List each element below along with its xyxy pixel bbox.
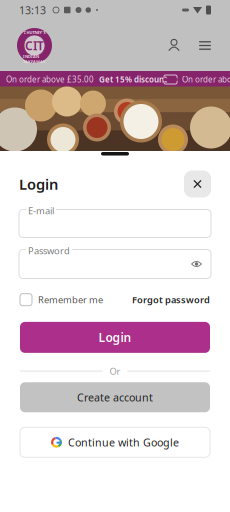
button[interactable]: Forgot password xyxy=(132,293,210,306)
staticText: Continue with Google xyxy=(68,435,179,449)
staticText: Password xyxy=(28,244,70,257)
staticText: Login xyxy=(19,174,58,194)
staticText: Or xyxy=(109,365,120,377)
button[interactable]: Create account xyxy=(20,382,210,412)
staticText: Remember me xyxy=(38,293,103,306)
staticText: Login xyxy=(98,329,131,345)
button[interactable]: Login xyxy=(20,322,210,353)
button[interactable]: Close xyxy=(184,170,211,197)
staticText: CIT xyxy=(25,37,44,53)
staticText: 13:13 xyxy=(19,3,46,17)
staticText: Forgot password xyxy=(132,293,210,306)
staticText: On order above £35.00 xyxy=(182,74,230,85)
staticText: E-mail xyxy=(28,204,54,217)
button[interactable]: Menu xyxy=(194,35,216,56)
button[interactable]: Continue with Google xyxy=(20,427,210,457)
button[interactable]: Remember me xyxy=(20,293,103,306)
staticText: Create account xyxy=(77,390,153,404)
staticText: Get 15% discount xyxy=(99,74,167,85)
staticText: CHUTNEY'S xyxy=(23,30,45,35)
staticText: INDIAN TAKEAWAY xyxy=(23,54,46,64)
button[interactable]: Account xyxy=(163,34,185,56)
staticText: On order above £35.00 xyxy=(6,74,94,85)
